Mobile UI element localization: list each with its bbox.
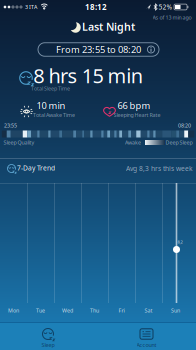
staticText: Deep Sleep: [165, 139, 192, 146]
staticText: 10 min: [36, 99, 65, 112]
staticText: Mon: [8, 307, 19, 314]
staticText: Awake: [125, 139, 141, 146]
button[interactable]: From 23:55 to 08:20: [38, 43, 159, 56]
staticText: Sleep: [41, 341, 54, 349]
staticText: Last Night: [82, 19, 135, 34]
staticText: Tue: [36, 307, 45, 314]
staticText: 52%: [158, 3, 172, 11]
staticText: Total Awake Time: [33, 111, 75, 119]
staticText: As of 13 min ago: [152, 14, 191, 21]
staticText: Account: [136, 341, 156, 349]
button[interactable]: Sleep: [0, 322, 98, 350]
staticText: Total Sleep Time: [31, 85, 70, 92]
staticText: Wed: [62, 307, 73, 314]
staticText: Sleeping Heart Rate: [113, 111, 160, 119]
staticText: From 23:55 to 08:20: [56, 43, 141, 56]
staticText: 8 hrs 15 min: [33, 62, 143, 89]
staticText: 3 ITA: [25, 3, 37, 11]
staticText: 08:20: [178, 122, 191, 129]
staticText: 23:55: [4, 122, 17, 129]
staticText: Avg 8,3 hrs this week: [126, 164, 193, 173]
button[interactable]: Account: [98, 322, 196, 350]
staticText: Sleep Quality: [3, 139, 34, 146]
staticText: 8,2: [177, 239, 182, 245]
staticText: 7-Day Trend: [17, 164, 55, 172]
staticText: Thu: [90, 307, 99, 314]
staticText: Sat: [144, 307, 152, 314]
staticText: 66 bpm: [117, 99, 150, 112]
staticText: 18:12: [85, 2, 107, 12]
staticText: Fri: [118, 307, 124, 314]
staticText: Sun: [171, 307, 180, 314]
